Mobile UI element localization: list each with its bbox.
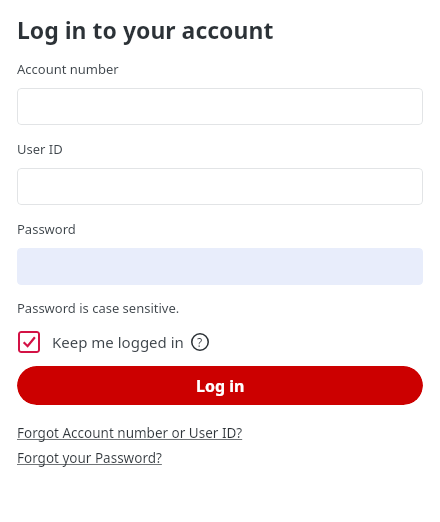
staticText: Log in [196,375,245,397]
staticText: Password is case sensitive. [17,299,180,317]
staticText: Log in to your account [17,14,274,45]
button[interactable]: Keep me logged in [17,331,184,353]
staticText: Forgot your Password? [17,449,162,467]
staticText: ? [197,334,203,350]
button[interactable]: Forgot your Password? [17,448,162,468]
staticText: Password [17,220,76,238]
staticText: Keep me logged in [52,332,184,352]
button[interactable]: Account number input [17,88,423,125]
staticText: Forgot Account number or User ID? [17,424,243,442]
button[interactable]: Log in [17,366,423,405]
button[interactable]: Forgot Account number or User ID? [17,423,243,443]
staticText: User ID [17,140,63,158]
button[interactable]: Help about keep me logged in [191,333,209,351]
staticText: Account number [17,60,119,78]
button[interactable]: User ID input [17,168,423,205]
